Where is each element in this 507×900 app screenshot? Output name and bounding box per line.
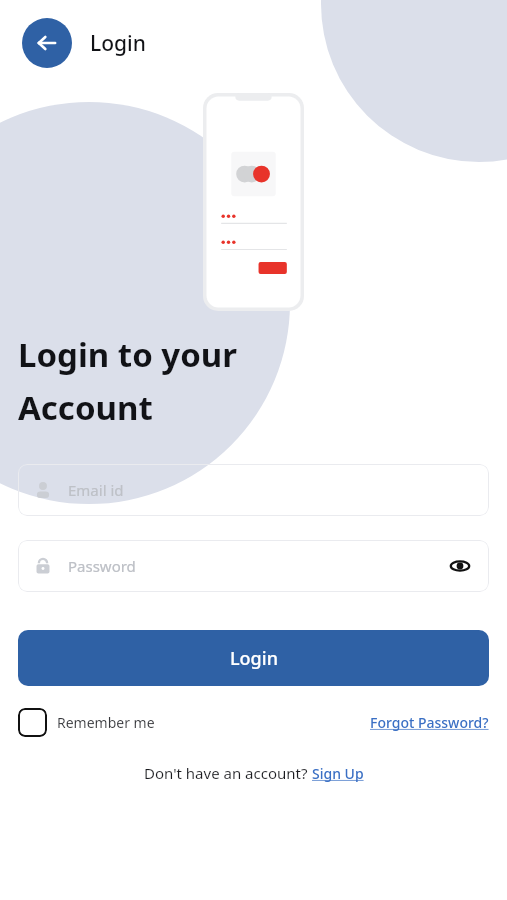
- staticText: Remember me: [57, 713, 155, 732]
- staticText: Login: [90, 29, 146, 58]
- button[interactable]: Sign Up: [312, 764, 364, 783]
- button[interactable]: Password: [18, 540, 489, 592]
- button[interactable]: Show password: [447, 553, 473, 579]
- staticText: Login: [230, 646, 278, 671]
- staticText: Login to your: [18, 332, 238, 377]
- button[interactable]: Forgot Password?: [370, 713, 489, 732]
- staticText: Don't have an account?: [144, 763, 312, 783]
- staticText: Password: [68, 556, 447, 576]
- button[interactable]: Back: [22, 18, 72, 68]
- button[interactable]: Login: [18, 630, 489, 686]
- staticText: Email id: [68, 480, 124, 500]
- button[interactable]: Email id: [18, 464, 489, 516]
- staticText: Account: [18, 385, 153, 430]
- button[interactable]: Remember me: [18, 708, 155, 737]
